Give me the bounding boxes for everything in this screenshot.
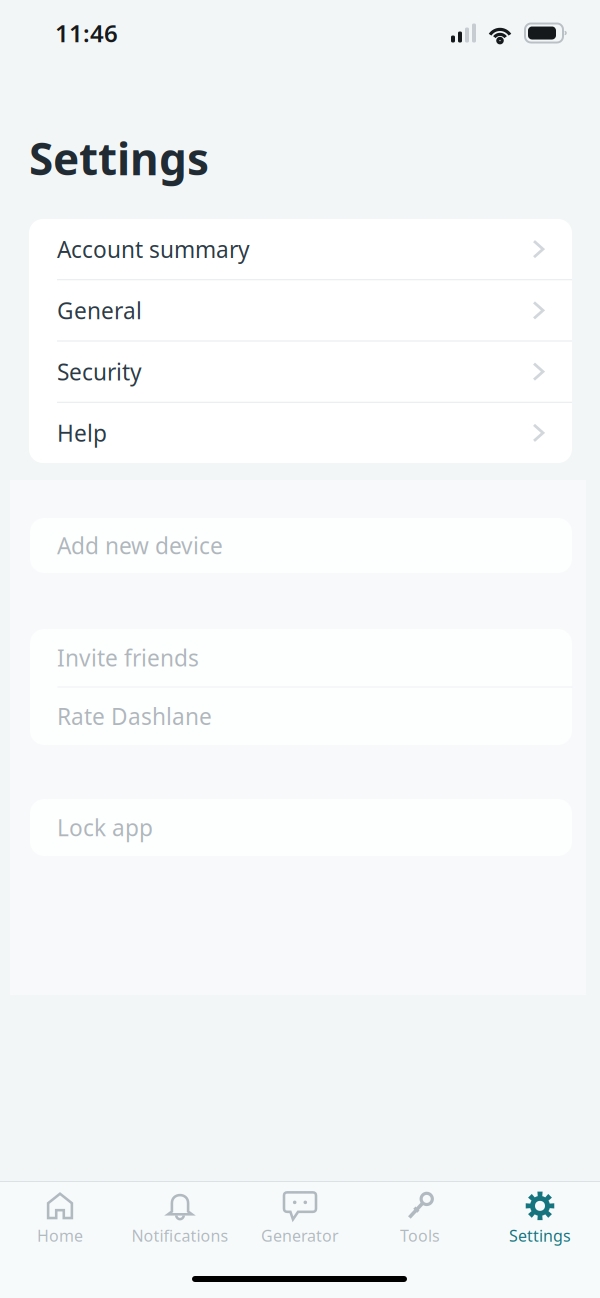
staticText: Settings [509, 1225, 571, 1246]
staticText: Invite friends [57, 643, 199, 673]
button[interactable]: Invite friends [30, 629, 572, 686]
button[interactable]: Lock app [30, 799, 572, 856]
staticText: General [57, 295, 142, 325]
button[interactable]: Generator [240, 1186, 360, 1252]
staticText: Generator [261, 1225, 339, 1246]
staticText: Settings [29, 129, 209, 187]
button[interactable]: Security [29, 341, 572, 402]
staticText: Add new device [57, 530, 223, 560]
staticText: Notifications [131, 1225, 228, 1246]
button[interactable]: Settings [480, 1186, 600, 1252]
button[interactable]: Add new device [30, 518, 572, 573]
staticText: Security [57, 357, 142, 387]
staticText: Lock app [57, 812, 153, 842]
staticText: Tools [400, 1225, 440, 1246]
button[interactable]: Rate Dashlane [30, 687, 572, 745]
button[interactable]: Account summary [29, 219, 572, 279]
staticText: Home [37, 1225, 83, 1246]
button[interactable]: Home [0, 1186, 120, 1252]
button[interactable]: Help [29, 403, 572, 463]
button[interactable]: Notifications [120, 1186, 240, 1252]
staticText: 11:46 [55, 17, 118, 49]
button[interactable]: Tools [360, 1186, 480, 1252]
button[interactable]: General [29, 280, 572, 340]
staticText: Account summary [57, 234, 250, 264]
staticText: Help [57, 418, 107, 448]
staticText: Rate Dashlane [57, 701, 212, 731]
